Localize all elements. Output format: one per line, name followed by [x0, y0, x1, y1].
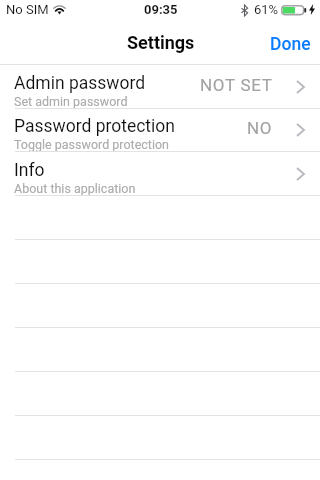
staticText: No SIM [6, 2, 49, 17]
staticText: 09:35 [144, 2, 178, 17]
other: Charging [309, 4, 315, 15]
other: Wi-Fi signal [53, 5, 66, 15]
button[interactable] [0, 416, 320, 460]
button[interactable]: Admin password [0, 65, 320, 109]
button[interactable] [0, 372, 320, 416]
staticText: NOT SET [200, 75, 273, 95]
staticText: Password protection [14, 116, 175, 137]
other: Bluetooth on [241, 5, 248, 16]
button[interactable] [0, 196, 320, 240]
other: Battery 61 percent [281, 5, 307, 16]
button[interactable]: Info [0, 152, 320, 196]
staticText: Toggle password protection [14, 137, 169, 152]
button[interactable] [0, 240, 320, 284]
staticText: Admin password [14, 73, 146, 94]
button[interactable]: Done [262, 28, 314, 56]
staticText: 61% [254, 2, 279, 17]
staticText: Set admin password [14, 94, 128, 109]
staticText: Done [270, 34, 311, 55]
button[interactable] [0, 328, 320, 372]
staticText: About this application [14, 181, 136, 196]
staticText: Settings [127, 32, 195, 53]
staticText: NO [247, 118, 273, 138]
staticText: Info [14, 160, 45, 181]
button[interactable]: Password protection [0, 108, 320, 152]
button[interactable] [0, 459, 320, 480]
button[interactable] [0, 284, 320, 328]
